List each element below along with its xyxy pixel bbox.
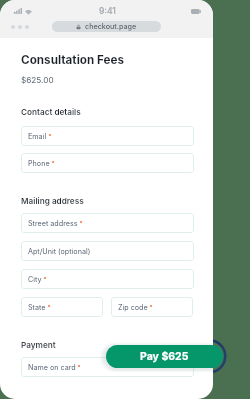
staticText: Payment	[21, 340, 56, 350]
button[interactable]: Zip code	[111, 297, 193, 317]
button[interactable]: Apt/Unit (optional)	[21, 241, 194, 261]
staticText: Contact details	[21, 107, 81, 117]
staticText: State	[28, 303, 46, 312]
staticText: City	[28, 275, 42, 284]
staticText: Email	[28, 132, 47, 141]
staticText: Street address	[28, 219, 78, 228]
button[interactable]: State	[21, 297, 103, 317]
button[interactable]: City	[21, 269, 194, 289]
staticText: Mailing address	[21, 196, 84, 206]
staticText: Apt/Unit (optional)	[28, 247, 91, 256]
button[interactable]: Pay $625	[106, 345, 223, 368]
button[interactable]: Street address	[21, 213, 194, 233]
button[interactable]: Address bar	[52, 21, 161, 32]
staticText: Pay $625	[140, 350, 189, 363]
staticText: Phone	[28, 159, 50, 168]
staticText: Consultation Fees	[21, 53, 125, 67]
staticText: $625.00	[21, 75, 54, 85]
button[interactable]: Phone	[21, 153, 194, 173]
staticText: Name on card	[28, 363, 76, 372]
button[interactable]: Name on card	[21, 357, 194, 377]
staticText: Zip code	[118, 303, 148, 312]
staticText: 9:41	[99, 6, 116, 16]
staticText: checkout.page	[85, 22, 137, 31]
button[interactable]: Email	[21, 126, 194, 146]
